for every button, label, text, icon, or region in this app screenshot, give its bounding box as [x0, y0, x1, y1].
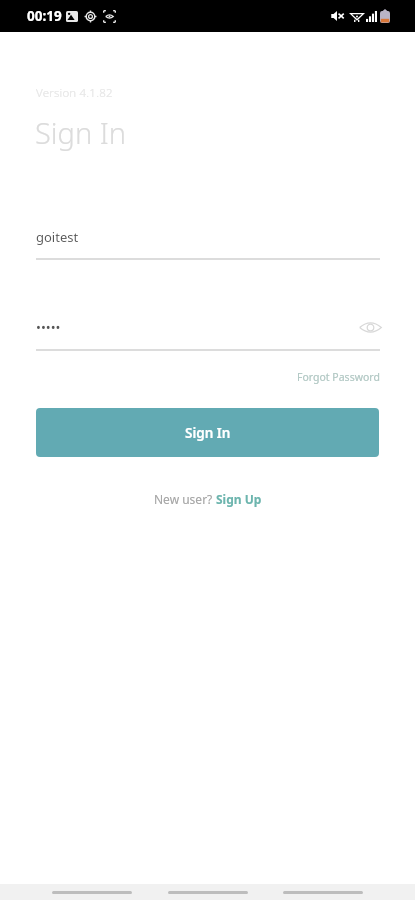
staticText: Sign In — [35, 113, 127, 152]
staticText: Sign Up — [216, 491, 262, 507]
button[interactable]: New user? — [150, 489, 266, 509]
staticText: Version 4.1.82 — [36, 85, 113, 101]
button[interactable]: Back — [52, 885, 132, 899]
staticText: 00:19 — [27, 7, 62, 25]
staticText: Sign In — [185, 424, 231, 442]
staticText: ••••• — [36, 318, 61, 336]
button[interactable]: Sign In — [36, 408, 379, 457]
button[interactable]: Recents — [283, 885, 363, 899]
staticText: goitest — [36, 228, 79, 246]
button[interactable]: Forgot Password — [292, 366, 380, 388]
staticText: New user? — [154, 491, 216, 507]
button[interactable]: Show password — [356, 313, 384, 341]
staticText: Forgot Password — [297, 370, 380, 384]
button[interactable]: Home — [168, 885, 248, 899]
